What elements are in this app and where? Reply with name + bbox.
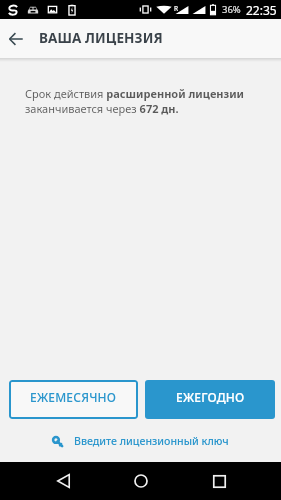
button[interactable]: Home (122, 462, 160, 500)
staticText: ВАША ЛИЦЕНЗИЯ (39, 29, 163, 47)
button[interactable]: Введите лицензионный ключ (0, 428, 281, 454)
button[interactable]: ЕЖЕГОДНО (145, 380, 275, 419)
staticText: ЕЖЕМЕСЯЧНО (30, 389, 117, 405)
staticText: 22:35 (246, 2, 277, 18)
button[interactable]: Back (44, 462, 82, 500)
staticText: 36% (222, 3, 241, 16)
staticText: Срок действия расширенной лицензии закан… (25, 86, 259, 116)
button[interactable]: Recent apps (200, 462, 238, 500)
button[interactable]: Back (0, 19, 31, 58)
staticText: Введите лицензионный ключ (74, 434, 229, 448)
button[interactable]: ЕЖЕМЕСЯЧНО (9, 380, 138, 419)
staticText: R (174, 4, 179, 13)
staticText: ЕЖЕГОДНО (176, 389, 245, 405)
